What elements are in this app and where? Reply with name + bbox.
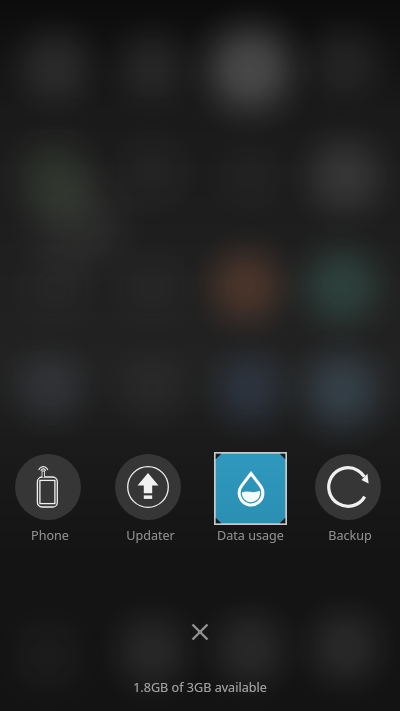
staticText: Phone <box>31 527 69 544</box>
button[interactable]: Phone <box>0 450 100 544</box>
staticText: 1.8GB of 3GB available <box>0 679 400 696</box>
staticText: Updater <box>126 527 175 544</box>
staticText: Data usage <box>217 527 284 544</box>
button[interactable]: Backup <box>300 450 400 544</box>
staticText: Backup <box>328 527 372 544</box>
button[interactable]: Updater <box>100 450 200 544</box>
button[interactable]: Data usage <box>200 450 300 544</box>
button[interactable]: Close <box>180 612 220 652</box>
